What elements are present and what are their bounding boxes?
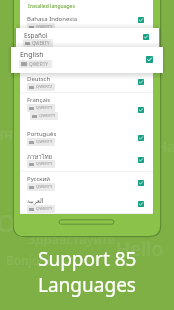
staticText: Hello xyxy=(116,236,163,262)
staticText: Olá xyxy=(0,206,37,239)
button[interactable]: Toggle language xyxy=(138,180,144,186)
staticText: ภาษาไทย xyxy=(27,152,53,162)
button[interactable]: Bahasa Indonesia xyxy=(20,12,153,28)
staticText: QWERTY xyxy=(36,206,53,212)
staticText: Français xyxy=(27,96,51,104)
button[interactable]: Toggle language xyxy=(138,201,144,207)
staticText: Bonjour xyxy=(6,252,52,268)
staticText: Languages xyxy=(38,272,136,298)
button[interactable]: العربية xyxy=(20,194,153,213)
button[interactable]: Deutsch xyxy=(20,72,153,93)
button[interactable]: Toggle language xyxy=(146,56,153,63)
staticText: Español xyxy=(24,31,48,40)
staticText: QWERTY xyxy=(39,113,56,119)
button[interactable]: Français xyxy=(20,93,153,127)
staticText: Русский xyxy=(27,175,50,183)
staticText: QWERTY xyxy=(29,61,49,67)
button[interactable]: ภาษาไทย xyxy=(20,149,153,171)
button[interactable]: Toggle language xyxy=(143,34,149,40)
staticText: QWERTY xyxy=(36,184,53,190)
staticText: Deutsch xyxy=(27,75,51,83)
button[interactable]: Toggle language xyxy=(138,157,144,163)
button[interactable]: Toggle language xyxy=(138,135,144,141)
staticText: QWERTY xyxy=(32,40,50,46)
button[interactable]: English xyxy=(11,47,163,73)
staticText: QWERTY xyxy=(36,139,53,145)
button[interactable]: Português xyxy=(20,127,153,149)
staticText: Здравствуйте xyxy=(28,230,115,248)
staticText: Installed languages xyxy=(28,3,75,10)
button[interactable]: Русский xyxy=(20,172,153,194)
button[interactable]: Toggle language xyxy=(138,79,144,85)
staticText: Support 85 xyxy=(38,246,137,272)
staticText: العربية xyxy=(27,197,44,204)
staticText: QWERTY xyxy=(36,161,53,167)
button[interactable]: Español xyxy=(16,28,159,47)
staticText: QWERTY xyxy=(36,105,53,111)
button[interactable]: Toggle language xyxy=(138,107,144,113)
staticText: Bahasa Indonesia xyxy=(27,15,78,23)
staticText: English xyxy=(20,50,44,59)
staticText: QWERTY xyxy=(36,24,53,30)
staticText: नमस्ते xyxy=(0,124,28,144)
staticText: Português xyxy=(27,130,57,138)
staticText: Halo xyxy=(156,136,174,156)
staticText: QWERTZ xyxy=(36,84,53,90)
button[interactable]: Toggle language xyxy=(138,17,144,23)
